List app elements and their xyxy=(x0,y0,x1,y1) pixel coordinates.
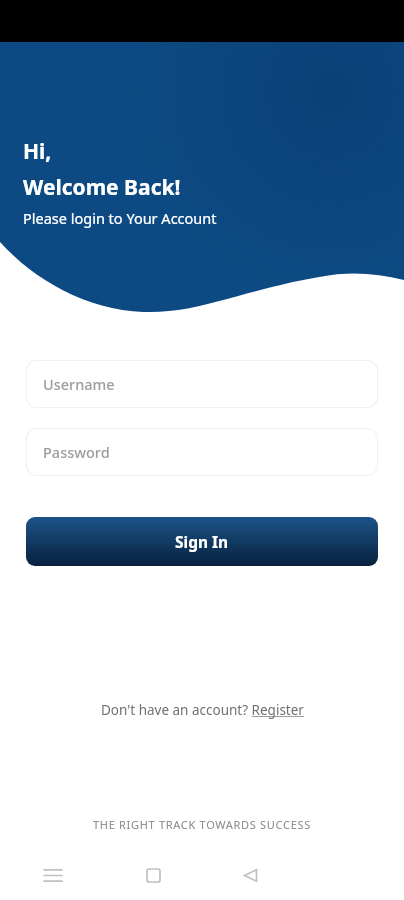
button[interactable]: Recent apps xyxy=(0,850,105,900)
staticText: Welcome Back! xyxy=(23,173,181,202)
button[interactable]: Back xyxy=(202,850,299,900)
staticText: Don't have an account? Register xyxy=(101,701,304,719)
button[interactable]: Sign In xyxy=(26,517,378,566)
staticText: Please login to Your Account xyxy=(23,208,217,228)
button[interactable]: Home xyxy=(105,850,202,900)
staticText: Sign In xyxy=(175,531,229,552)
button[interactable]: Don't have an account? Register xyxy=(97,699,308,721)
button[interactable]: Username xyxy=(26,360,378,408)
staticText: Hi, xyxy=(23,137,52,166)
staticText: Password xyxy=(43,442,110,462)
staticText: Username xyxy=(43,374,115,394)
button[interactable]: Password xyxy=(26,428,378,476)
staticText: THE RIGHT TRACK TOWARDS SUCCESS xyxy=(93,817,311,832)
